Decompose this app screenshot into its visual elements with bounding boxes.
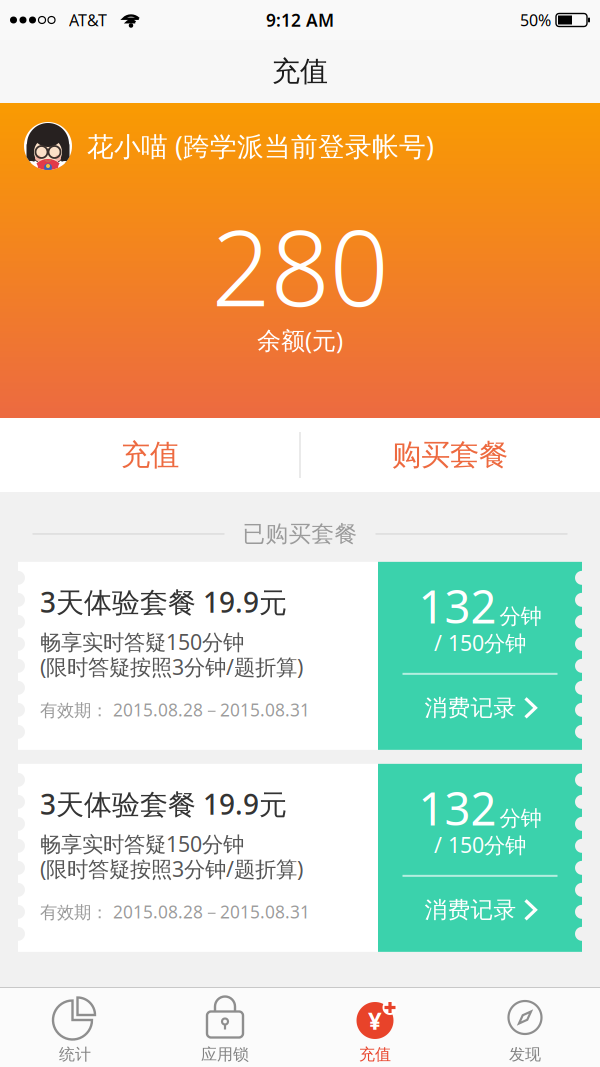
- staticText: 有效期： 2015.08.28－2015.08.31: [40, 900, 310, 923]
- staticText: 3天体验套餐 19.9元: [40, 785, 287, 822]
- staticText: 发现: [509, 1045, 541, 1064]
- button[interactable]: ¥: [300, 988, 450, 1066]
- staticText: 分钟: [499, 603, 541, 629]
- staticText: 畅享实时答疑150分钟: [40, 628, 244, 656]
- button[interactable]: 发现: [450, 988, 600, 1066]
- staticText: 充值: [272, 54, 328, 89]
- staticText: 132: [418, 576, 496, 636]
- button[interactable]: 应用锁: [150, 988, 300, 1066]
- button[interactable]: 充值: [0, 418, 300, 492]
- staticText: 花小喵 (跨学派当前登录帐号): [87, 128, 434, 164]
- staticText: 有效期： 2015.08.28－2015.08.31: [40, 698, 310, 721]
- button[interactable]: 统计: [0, 988, 150, 1066]
- staticText: 132: [418, 778, 496, 838]
- button[interactable]: 132: [378, 764, 582, 952]
- button[interactable]: 购买套餐: [300, 418, 600, 492]
- staticText: 3天体验套餐 19.9元: [40, 583, 287, 620]
- staticText: 已购买套餐: [242, 520, 357, 548]
- staticText: (限时答疑按照3分钟/题折算): [40, 653, 303, 681]
- staticText: 畅享实时答疑150分钟: [40, 830, 244, 858]
- staticText: 充值: [121, 437, 179, 473]
- staticText: ¥: [368, 1005, 382, 1036]
- staticText: 充值: [359, 1045, 391, 1064]
- button[interactable]: 132: [378, 562, 582, 750]
- staticText: 购买套餐: [392, 437, 508, 473]
- staticText: 统计: [59, 1045, 91, 1064]
- staticText: AT&T: [69, 9, 107, 31]
- staticText: / 150分钟: [434, 629, 526, 657]
- staticText: 分钟: [499, 805, 541, 831]
- staticText: 9:12 AM: [266, 8, 334, 31]
- staticText: 消费记录: [424, 896, 516, 924]
- staticText: 50%: [520, 9, 551, 31]
- staticText: 280: [211, 197, 388, 335]
- staticText: 消费记录: [424, 694, 516, 722]
- staticText: (限时答疑按照3分钟/题折算): [40, 855, 303, 883]
- staticText: / 150分钟: [434, 831, 526, 859]
- staticText: 余额(元): [257, 324, 343, 356]
- staticText: 应用锁: [201, 1045, 249, 1064]
